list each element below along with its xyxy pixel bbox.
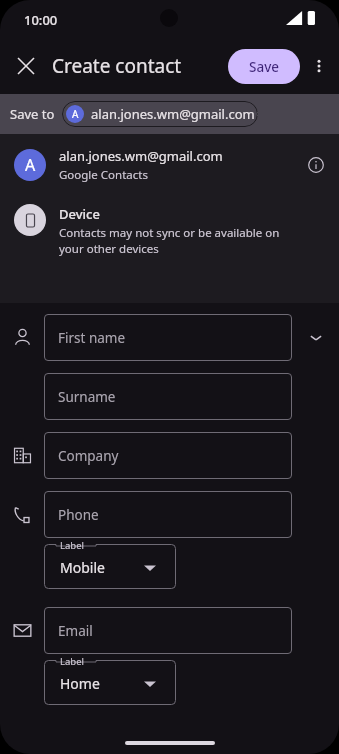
button[interactable]: Account info: [298, 147, 334, 183]
button[interactable]: Phone: [44, 491, 292, 538]
staticText: Home: [60, 674, 100, 693]
staticText: Create contact: [52, 53, 182, 79]
staticText: alan.jones.wm@gmail.com: [59, 147, 223, 165]
button[interactable]: Email: [44, 607, 292, 654]
staticText: Phone: [58, 506, 99, 524]
button[interactable]: Label: [44, 544, 176, 589]
staticText: Email: [58, 622, 93, 640]
staticText: alan.jones.wm@gmail.com: [91, 105, 255, 123]
staticText: Contacts may not sync or be available on…: [59, 225, 299, 257]
staticText: First name: [58, 329, 126, 347]
staticText: A: [25, 154, 36, 176]
button[interactable]: Company: [44, 432, 292, 479]
staticText: Save to: [10, 105, 55, 123]
button[interactable]: A: [62, 101, 258, 127]
button[interactable]: Label: [44, 660, 176, 705]
button[interactable]: Close: [8, 48, 44, 84]
staticText: Label: [60, 539, 84, 552]
button[interactable]: Device: [0, 196, 339, 266]
button[interactable]: Expand name fields: [300, 314, 332, 361]
staticText: Company: [58, 447, 119, 465]
button[interactable]: Save: [228, 49, 300, 84]
button[interactable]: More options: [303, 50, 335, 82]
button[interactable]: Surname: [44, 373, 292, 420]
staticText: 10:00: [24, 11, 58, 29]
button[interactable]: A: [0, 134, 339, 196]
staticText: Google Contacts: [59, 167, 148, 183]
button[interactable]: First name: [44, 314, 292, 361]
staticText: Label: [60, 655, 84, 668]
staticText: Surname: [58, 388, 116, 406]
staticText: A: [72, 107, 79, 121]
staticText: Mobile: [60, 558, 105, 577]
staticText: Device: [59, 205, 100, 223]
staticText: Save: [249, 58, 280, 76]
